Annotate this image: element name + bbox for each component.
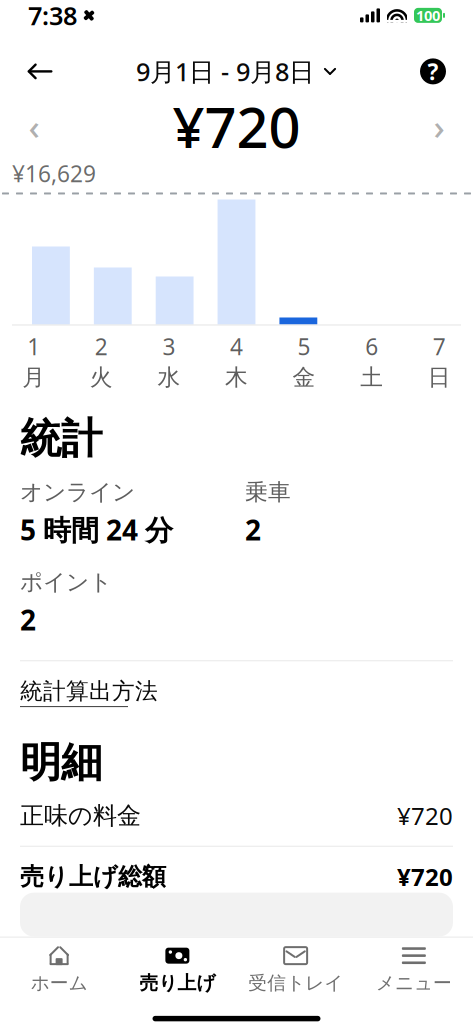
staticText: ポイント: [20, 568, 112, 596]
staticText: 7:38: [28, 0, 77, 32]
staticText: ¥720: [397, 861, 453, 893]
button[interactable]: ホーム: [0, 938, 118, 1002]
staticText: 2: [245, 511, 261, 548]
staticText: 売り上げ総額: [20, 862, 166, 891]
button[interactable]: メニュー: [355, 938, 473, 1002]
staticText: 正味の料金: [20, 801, 141, 831]
button[interactable]: 9月1日 - 9月8日: [136, 49, 337, 93]
staticText: 5 時間 24 分: [20, 511, 173, 548]
staticText: 5: [298, 331, 311, 362]
staticText: 統計: [20, 413, 102, 464]
staticText: 7: [433, 331, 446, 362]
staticText: 金: [293, 364, 316, 391]
staticText: メニュー: [376, 972, 452, 994]
button[interactable]: 前の週: [12, 103, 56, 149]
staticText: 売り上げ: [139, 972, 215, 994]
staticText: 統計算出方法: [20, 677, 158, 705]
staticText: ¥720: [397, 800, 453, 832]
button[interactable]: 戻る: [18, 49, 62, 93]
button[interactable]: 次の週: [417, 103, 461, 149]
staticText: 2: [20, 601, 36, 638]
staticText: 4: [230, 331, 243, 362]
staticText: 9月1日 - 9月8日: [136, 55, 314, 88]
staticText: 月: [22, 364, 45, 391]
staticText: 木: [225, 364, 248, 391]
staticText: 水: [157, 364, 180, 391]
staticText: ¥720: [172, 89, 300, 164]
staticText: ホーム: [31, 972, 88, 994]
button[interactable]: 売り上げ: [118, 938, 236, 1002]
staticText: ¥16,629: [12, 158, 96, 188]
staticText: 火: [90, 364, 113, 391]
staticText: 乗車: [245, 478, 291, 506]
staticText: 6: [365, 331, 378, 362]
staticText: オンライン: [20, 478, 135, 506]
staticText: 3: [162, 331, 175, 362]
staticText: 1: [27, 331, 40, 362]
staticText: 土: [360, 364, 383, 391]
staticText: ?: [427, 56, 438, 86]
staticText: 100: [416, 6, 440, 25]
staticText: 明細: [20, 737, 102, 788]
staticText: 日: [428, 364, 451, 391]
button[interactable]: 受信トレイ: [236, 938, 355, 1002]
button[interactable]: 統計算出方法: [20, 661, 158, 711]
staticText: ›: [433, 103, 444, 149]
button[interactable]: ヘルプ: [411, 49, 455, 93]
staticText: ‹: [28, 103, 39, 149]
staticText: 受信トレイ: [248, 972, 343, 994]
staticText: 2: [95, 331, 108, 362]
